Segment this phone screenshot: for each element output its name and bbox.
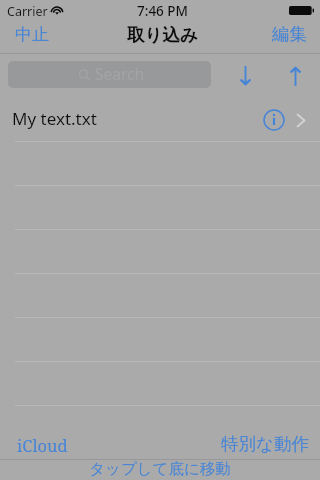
button[interactable]: 中止 bbox=[0, 22, 62, 53]
button[interactable]: タップして底に移動 bbox=[0, 460, 320, 480]
staticText: Search bbox=[95, 63, 145, 84]
staticText: 特別な動作 bbox=[221, 433, 309, 455]
staticText: 取り込み bbox=[127, 24, 198, 46]
button[interactable]: Sort ascending bbox=[280, 62, 310, 92]
staticText: 中止 bbox=[15, 24, 49, 45]
button[interactable]: 特別な動作 bbox=[207, 429, 320, 459]
button[interactable]: iCloud bbox=[0, 429, 81, 459]
button[interactable]: Info bbox=[263, 109, 285, 131]
staticText: iCloud bbox=[17, 434, 68, 456]
button[interactable]: Sort descending bbox=[230, 60, 260, 90]
staticText: My text.txt bbox=[12, 107, 97, 130]
button[interactable]: 編集 bbox=[260, 21, 320, 53]
staticText: 7:46 PM bbox=[137, 2, 188, 20]
staticText: タップして底に移動 bbox=[89, 459, 231, 479]
staticText: Carrier bbox=[7, 3, 48, 20]
button[interactable]: My text.txt bbox=[0, 97, 320, 142]
staticText: 編集 bbox=[272, 23, 307, 45]
